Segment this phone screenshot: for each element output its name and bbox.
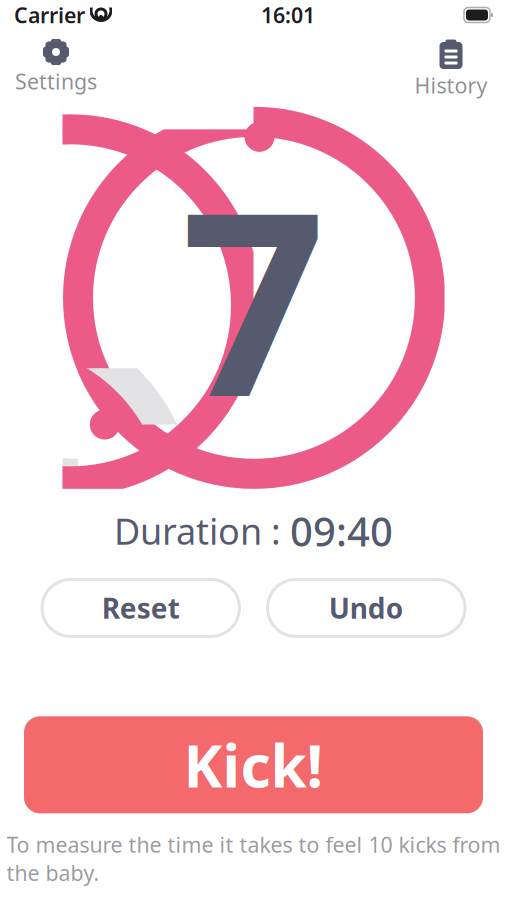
staticText: 16:01 [261,1,315,29]
staticText: : [262,507,290,555]
button[interactable]: Undo [267,579,465,636]
staticText: 09:40 [290,504,393,557]
staticText: 7 [181,130,326,466]
staticText: Undo [329,589,404,627]
staticText: Settings [15,67,97,95]
staticText: Duration [114,507,262,555]
staticText: History [414,71,487,99]
button[interactable]: Settings [10,34,102,99]
staticText: Kick! [183,726,323,804]
button[interactable]: History [405,34,497,103]
staticText: Reset [102,589,180,627]
staticText: Carrier [14,1,85,29]
button[interactable]: Reset [42,579,239,636]
button[interactable]: Kick! [24,716,483,813]
staticText: To measure the time it takes to feel 10 … [6,830,500,887]
